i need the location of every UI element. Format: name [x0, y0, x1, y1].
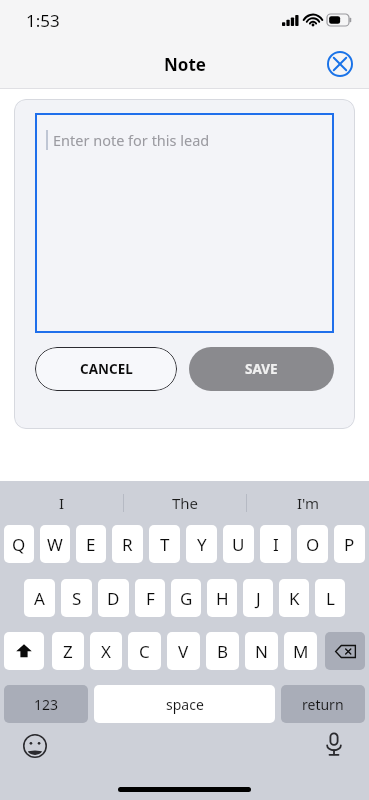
staticText: space [166, 695, 204, 714]
staticText: Z [63, 640, 73, 663]
button[interactable]: return [281, 685, 365, 723]
staticText: U [232, 533, 245, 556]
staticText: O [306, 533, 320, 556]
button[interactable]: W [40, 525, 70, 563]
button[interactable]: M [284, 632, 317, 670]
staticText: CANCEL [80, 360, 133, 378]
button[interactable]: Backspace [325, 632, 365, 670]
staticText: E [86, 533, 96, 556]
staticText: return [302, 695, 344, 714]
button[interactable]: R [112, 525, 143, 563]
button[interactable]: Z [52, 632, 84, 670]
staticText: A [34, 587, 45, 610]
button[interactable]: P [334, 525, 365, 563]
staticText: 1:53 [26, 9, 60, 32]
button[interactable]: K [279, 579, 309, 617]
staticText: W [47, 533, 63, 556]
button[interactable]: V [167, 632, 200, 670]
button[interactable]: Q [4, 525, 34, 563]
staticText: Enter note for this lead [53, 130, 210, 150]
button[interactable]: X [90, 632, 122, 670]
staticText: I [273, 533, 279, 556]
staticText: G [180, 587, 193, 610]
button[interactable]: I [260, 525, 291, 563]
staticText: M [293, 640, 309, 663]
button[interactable]: Shift [4, 632, 44, 670]
staticText: N [255, 640, 268, 663]
button[interactable]: O [297, 525, 328, 563]
button[interactable]: I'm [247, 481, 369, 525]
button[interactable]: T [149, 525, 180, 563]
staticText: Y [197, 533, 207, 556]
staticText: Note [164, 53, 206, 76]
staticText: B [217, 640, 229, 663]
staticText: 123 [34, 695, 59, 714]
button[interactable]: N [245, 632, 278, 670]
button[interactable]: A [24, 579, 55, 617]
button[interactable]: S [61, 579, 92, 617]
staticText: X [101, 640, 111, 663]
button[interactable]: Dictation [321, 731, 347, 757]
button[interactable]: L [315, 579, 345, 617]
staticText: S [72, 587, 82, 610]
button[interactable]: H [207, 579, 237, 617]
staticText: SAVE [245, 360, 278, 378]
button[interactable]: SAVE [189, 347, 334, 391]
staticText: C [139, 640, 150, 663]
button[interactable]: 123 [4, 685, 88, 723]
button[interactable]: E [76, 525, 106, 563]
button[interactable]: I [0, 481, 123, 525]
staticText: K [289, 587, 300, 610]
button[interactable]: CANCEL [35, 347, 177, 391]
button[interactable]: C [128, 632, 161, 670]
staticText: H [216, 587, 229, 610]
button[interactable]: J [243, 579, 273, 617]
button[interactable]: B [206, 632, 239, 670]
staticText: F [146, 587, 155, 610]
button[interactable]: U [223, 525, 254, 563]
button[interactable]: Y [186, 525, 217, 563]
staticText: D [107, 587, 120, 610]
button[interactable]: Close [325, 49, 355, 79]
button[interactable]: Emoji [22, 733, 48, 759]
staticText: I [59, 493, 65, 513]
staticText: P [344, 533, 355, 556]
button[interactable]: G [171, 579, 201, 617]
button[interactable]: Enter note for this lead [35, 113, 334, 333]
staticText: T [160, 533, 170, 556]
staticText: L [326, 587, 335, 610]
staticText: J [256, 587, 261, 610]
staticText: R [122, 533, 133, 556]
staticText: The [172, 493, 199, 513]
staticText: I'm [297, 493, 320, 513]
staticText: Q [12, 533, 26, 556]
staticText: V [178, 640, 189, 663]
button[interactable]: F [135, 579, 165, 617]
button[interactable]: D [98, 579, 129, 617]
button[interactable]: The [124, 481, 246, 525]
button[interactable]: space [94, 685, 275, 723]
